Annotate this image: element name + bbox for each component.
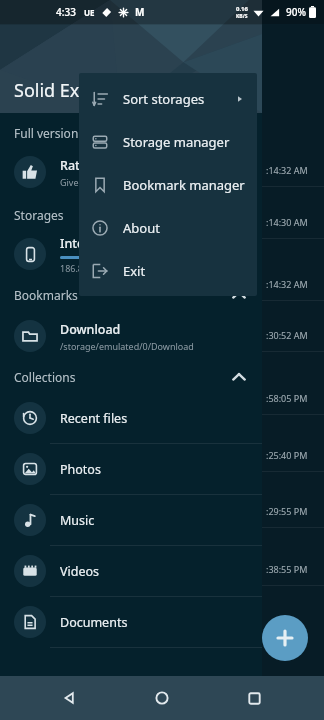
staticText: UE bbox=[84, 7, 95, 18]
button[interactable]: Collections bbox=[0, 361, 262, 393]
staticText: Rate the app bbox=[60, 157, 136, 174]
staticText: Download bbox=[60, 321, 121, 338]
staticText: Collections bbox=[14, 369, 230, 385]
staticText: :25:40 PM bbox=[266, 449, 308, 461]
button[interactable]: Add bbox=[262, 615, 308, 661]
staticText: 90% bbox=[286, 5, 306, 19]
staticText: Storages bbox=[14, 207, 64, 223]
staticText: :29:55 PM bbox=[266, 505, 308, 517]
staticText: Sort storages bbox=[123, 90, 235, 108]
button[interactable]: About bbox=[79, 206, 257, 249]
staticText: :58:05 PM bbox=[266, 392, 308, 404]
button[interactable]: Exit bbox=[79, 249, 257, 292]
staticText: Recent files bbox=[60, 410, 128, 427]
button[interactable]: Storage manager bbox=[79, 120, 257, 163]
staticText: Full version bbox=[14, 125, 79, 141]
staticText: Give Solid Explorer a rating bbox=[60, 176, 175, 188]
staticText: M bbox=[135, 5, 145, 19]
staticText: 4:33 bbox=[56, 5, 76, 19]
staticText: 0.16 bbox=[236, 5, 248, 13]
staticText: :14:32 AM bbox=[266, 278, 308, 290]
staticText: Internal memory bbox=[60, 235, 162, 252]
staticText: Exit bbox=[123, 262, 245, 280]
staticText: :30:52 AM bbox=[266, 329, 308, 341]
button[interactable]: Bookmark manager bbox=[79, 163, 257, 206]
button[interactable]: Rate the app bbox=[0, 147, 262, 197]
staticText: About bbox=[123, 219, 245, 237]
staticText: :14:32 AM bbox=[266, 164, 308, 176]
staticText: Storage manager bbox=[123, 133, 245, 151]
button[interactable]: Documents bbox=[0, 597, 262, 647]
staticText: :38:55 PM bbox=[266, 563, 308, 575]
button[interactable]: Bookmarks bbox=[0, 279, 262, 311]
staticText: KB/S bbox=[236, 13, 248, 20]
staticText: Solid Explorer bbox=[14, 78, 131, 103]
staticText: /storage/emulated/0/Download bbox=[60, 340, 194, 352]
staticText: :14:30 AM bbox=[266, 216, 308, 228]
button[interactable]: Music bbox=[0, 495, 262, 545]
button[interactable]: Internal memory bbox=[0, 229, 262, 279]
staticText: 186.85 GB free of 256 GB bbox=[60, 262, 166, 274]
staticText: Videos bbox=[60, 563, 100, 580]
button[interactable]: Home bbox=[140, 676, 184, 720]
button[interactable]: Sort storages bbox=[79, 77, 257, 120]
staticText: Photos bbox=[60, 461, 101, 478]
button[interactable]: Recents bbox=[232, 676, 276, 720]
button[interactable]: Download bbox=[0, 311, 262, 361]
button[interactable]: Back bbox=[48, 676, 92, 720]
staticText: Bookmark manager bbox=[123, 176, 245, 194]
staticText: Bookmarks bbox=[14, 287, 230, 303]
button[interactable]: Recent files bbox=[0, 393, 262, 443]
button[interactable]: Videos bbox=[0, 546, 262, 596]
staticText: Documents bbox=[60, 614, 128, 631]
button[interactable]: Photos bbox=[0, 444, 262, 494]
staticText: Music bbox=[60, 512, 95, 529]
